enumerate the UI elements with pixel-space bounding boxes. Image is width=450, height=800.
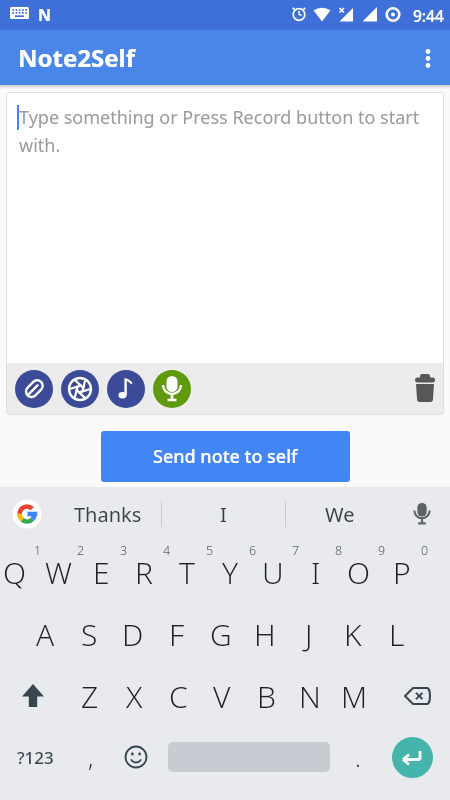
staticText: C	[169, 676, 188, 717]
staticText: E	[93, 552, 110, 593]
button[interactable]: F	[156, 603, 198, 665]
button[interactable]: W	[37, 541, 79, 603]
button[interactable]: ?123	[10, 727, 60, 787]
staticText: 1	[34, 542, 42, 558]
button[interactable]: O	[338, 541, 380, 603]
button[interactable]: V	[201, 665, 243, 727]
staticText: 4	[163, 542, 171, 558]
staticText: I	[311, 552, 321, 593]
button[interactable]: Send note to self	[101, 431, 350, 482]
staticText: Q	[3, 552, 27, 593]
staticText: Type something or Press Record button to…	[19, 105, 420, 157]
staticText: I	[220, 501, 227, 528]
button[interactable]: I	[162, 487, 285, 541]
staticText: B	[257, 676, 276, 717]
button[interactable]: N	[289, 665, 331, 727]
staticText: Note2Self	[18, 41, 135, 74]
staticText: Send note to self	[153, 444, 298, 469]
button[interactable]	[402, 30, 450, 85]
button[interactable]	[409, 373, 441, 405]
staticText: 3	[120, 542, 128, 558]
staticText: A	[36, 614, 55, 655]
button[interactable]: T	[166, 541, 208, 603]
staticText: Y	[222, 552, 239, 593]
staticText: T	[179, 552, 195, 593]
staticText: P	[393, 552, 411, 593]
staticText: 6	[249, 542, 257, 558]
button[interactable]	[15, 370, 53, 408]
staticText: X	[126, 676, 143, 717]
button[interactable]	[114, 727, 158, 787]
button[interactable]: E	[80, 541, 122, 603]
staticText: ?123	[17, 746, 54, 769]
staticText: 9	[378, 542, 386, 558]
button[interactable]	[107, 370, 145, 408]
staticText: .	[355, 741, 361, 774]
button[interactable]: X	[113, 665, 155, 727]
staticText: 5	[206, 542, 214, 558]
staticText: 0	[421, 542, 429, 558]
button[interactable]: B	[245, 665, 287, 727]
button[interactable]: P	[381, 541, 423, 603]
button[interactable]: Y	[209, 541, 251, 603]
button[interactable]: C	[157, 665, 199, 727]
button[interactable]: Q	[0, 541, 36, 603]
staticText: G	[210, 614, 232, 655]
button[interactable]: Z	[69, 665, 111, 727]
button[interactable]: K	[332, 603, 374, 665]
staticText: ,	[88, 741, 94, 774]
button[interactable]: I	[295, 541, 337, 603]
button[interactable]: .	[336, 727, 380, 787]
staticText: Z	[81, 676, 99, 717]
staticText: W	[45, 552, 72, 593]
button[interactable]: M	[333, 665, 375, 727]
staticText: J	[305, 614, 313, 655]
staticText: H	[254, 614, 276, 655]
button[interactable]	[153, 370, 191, 408]
button[interactable]	[0, 487, 54, 541]
staticText: M	[341, 676, 368, 717]
staticText: 9:44	[413, 5, 444, 26]
staticText: L	[389, 614, 405, 655]
staticText: K	[344, 614, 362, 655]
staticText: N	[38, 4, 52, 26]
button[interactable]	[61, 370, 99, 408]
button[interactable]: Type something or Press Record button to…	[6, 92, 444, 363]
staticText: Thanks	[74, 501, 142, 528]
staticText: R	[135, 552, 153, 593]
button[interactable]: ,	[69, 727, 113, 787]
staticText: 2	[77, 542, 85, 558]
button[interactable]: L	[376, 603, 418, 665]
staticText: N	[299, 676, 321, 717]
button[interactable]	[0, 665, 66, 727]
staticText: 7	[292, 542, 300, 558]
button[interactable]: G	[200, 603, 242, 665]
button[interactable]: H	[244, 603, 286, 665]
button[interactable]: U	[252, 541, 294, 603]
button[interactable]: We	[286, 487, 394, 541]
staticText: F	[169, 614, 185, 655]
button[interactable]: R	[123, 541, 165, 603]
staticText: V	[213, 676, 231, 717]
staticText: 8	[335, 542, 343, 558]
button[interactable]: D	[112, 603, 154, 665]
button[interactable]: S	[68, 603, 110, 665]
staticText: O	[347, 552, 371, 593]
staticText: U	[262, 552, 284, 593]
button[interactable]: J	[288, 603, 330, 665]
button[interactable]: A	[24, 603, 66, 665]
button[interactable]	[392, 737, 433, 778]
button[interactable]	[394, 487, 450, 541]
staticText: We	[325, 501, 355, 528]
button[interactable]	[384, 665, 450, 727]
button[interactable]: Thanks	[54, 487, 161, 541]
staticText: D	[122, 614, 144, 655]
staticText: S	[81, 614, 98, 655]
